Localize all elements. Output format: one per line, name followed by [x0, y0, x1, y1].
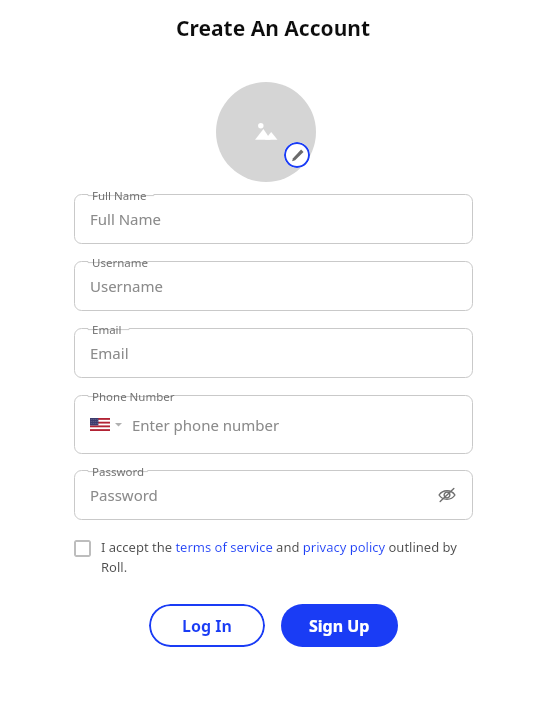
staticText: Full Name — [92, 188, 147, 204]
button[interactable]: Profile picture — [216, 82, 316, 182]
staticText: I accept the terms of service and privac… — [101, 538, 473, 576]
staticText: Create An Account — [176, 14, 371, 43]
staticText: Log In — [182, 615, 232, 637]
button[interactable]: Sign Up — [281, 604, 398, 647]
button[interactable]: Edit profile picture — [284, 142, 310, 168]
button[interactable]: Enter phone number — [74, 395, 473, 454]
button[interactable]: Full Name — [74, 194, 473, 244]
staticText: Phone Number — [92, 389, 175, 405]
button[interactable]: Show password — [435, 483, 459, 507]
button[interactable]: Accept terms — [74, 540, 91, 557]
button[interactable]: Log In — [149, 604, 265, 647]
staticText: Password — [92, 464, 145, 480]
staticText: Email — [92, 322, 122, 338]
staticText: Password — [90, 485, 435, 505]
staticText: Username — [92, 255, 148, 271]
staticText: Email — [90, 343, 459, 363]
button[interactable]: Email — [74, 328, 473, 378]
staticText: Full Name — [90, 209, 459, 229]
button[interactable]: Username — [74, 261, 473, 311]
staticText: Enter phone number — [132, 415, 459, 435]
staticText: Username — [90, 276, 459, 296]
button[interactable]: Password — [74, 470, 473, 520]
staticText: Sign Up — [309, 615, 370, 637]
